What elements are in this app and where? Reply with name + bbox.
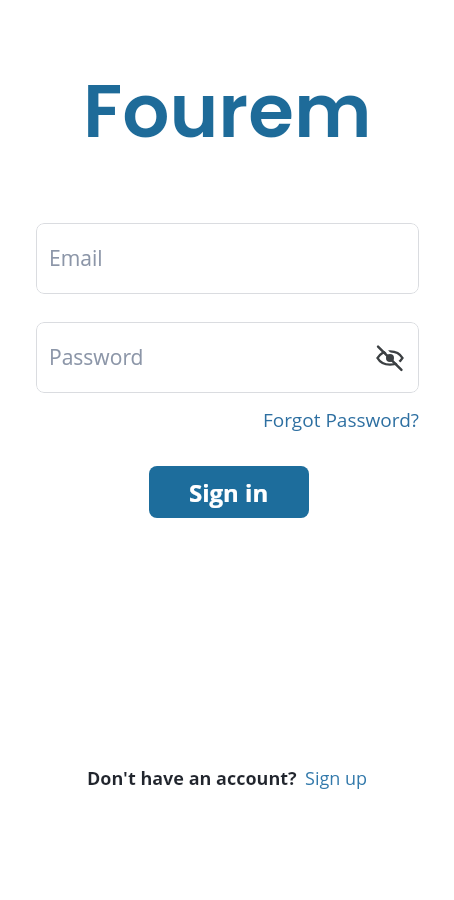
staticText: Password xyxy=(49,343,144,372)
button[interactable]: Forgot Password? xyxy=(263,407,419,433)
button[interactable]: Sign in xyxy=(149,466,309,518)
button[interactable]: Email xyxy=(36,223,419,294)
staticText: Email xyxy=(49,244,103,273)
button[interactable]: Sign up xyxy=(305,766,368,791)
staticText: Fourem xyxy=(83,59,372,163)
staticText: Sign in xyxy=(189,476,269,509)
button[interactable] xyxy=(377,345,403,371)
staticText: Don't have an account? xyxy=(87,766,297,791)
button[interactable]: Password xyxy=(36,322,419,393)
